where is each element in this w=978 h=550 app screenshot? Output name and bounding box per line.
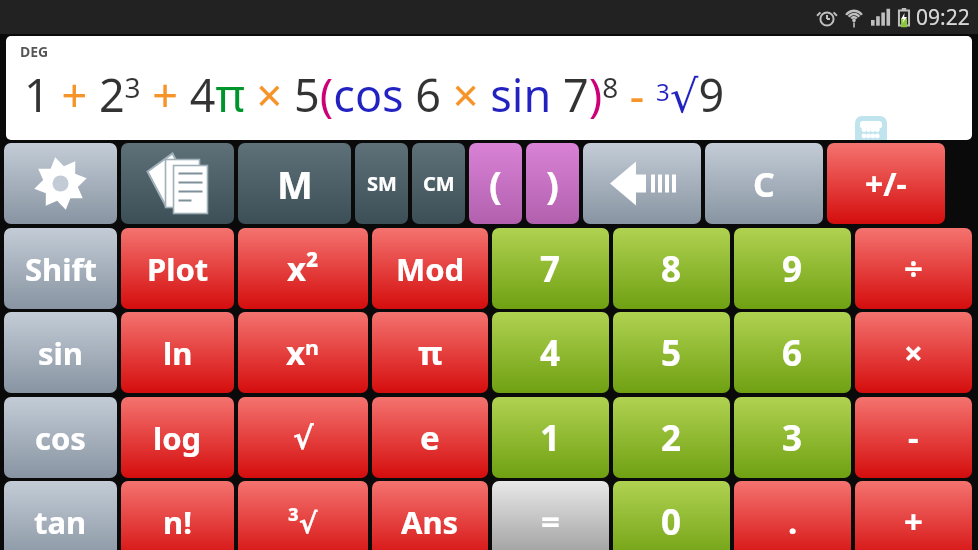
staticText: 8 [661, 245, 682, 293]
staticText: +/- [865, 162, 907, 206]
staticText: ³√ [288, 503, 318, 541]
staticText: 2 [661, 414, 682, 462]
staticText: 0 [661, 498, 682, 546]
button[interactable]: 4 [492, 312, 609, 393]
staticText: + [904, 499, 923, 544]
staticText: M [277, 158, 313, 210]
button[interactable]: + [855, 481, 972, 550]
staticText: 3 [782, 414, 803, 462]
staticText: ) [546, 158, 559, 210]
button[interactable]: ÷ [855, 228, 972, 309]
staticText: DEG [20, 42, 49, 61]
button[interactable]: x² [238, 228, 368, 309]
staticText: . [788, 499, 798, 544]
button[interactable]: M [238, 143, 351, 224]
staticText: × [904, 330, 923, 375]
button[interactable]: Backspace [583, 143, 701, 224]
staticText: Mod [396, 248, 465, 290]
button[interactable]: 7 [492, 228, 609, 309]
button[interactable]: ln [121, 312, 234, 393]
staticText: 7 [540, 245, 561, 293]
button[interactable]: 9 [734, 228, 851, 309]
staticText: = [541, 499, 560, 544]
button[interactable]: cos [4, 397, 117, 478]
staticText: ( [489, 158, 502, 210]
staticText: Plot [147, 248, 209, 290]
button[interactable]: sin [4, 312, 117, 393]
button[interactable]: log [121, 397, 234, 478]
button[interactable]: Settings [4, 143, 117, 224]
staticText: n! [163, 501, 192, 543]
button[interactable]: Ans [372, 481, 488, 550]
button[interactable]: × [855, 312, 972, 393]
staticText: cos [35, 417, 86, 459]
button[interactable]: - [855, 397, 972, 478]
button[interactable]: Plot [121, 228, 234, 309]
staticText: sin [38, 332, 83, 374]
button[interactable]: 6 [734, 312, 851, 393]
button[interactable]: = [492, 481, 609, 550]
button[interactable]: n! [121, 481, 234, 550]
button[interactable]: Shift [4, 228, 117, 309]
staticText: SM [367, 170, 397, 197]
button[interactable]: ³√ [238, 481, 368, 550]
staticText: - [908, 415, 919, 460]
button[interactable]: C [705, 143, 823, 224]
button[interactable]: 3 [734, 397, 851, 478]
button[interactable]: xⁿ [238, 312, 368, 393]
staticText: √ [293, 420, 314, 456]
button[interactable]: 1 [492, 397, 609, 478]
staticText: ÷ [904, 246, 923, 291]
button[interactable]: 2 [613, 397, 730, 478]
button[interactable]: Mod [372, 228, 488, 309]
staticText: 09:22 [916, 3, 970, 32]
button[interactable]: . [734, 481, 851, 550]
button[interactable]: 0 [613, 481, 730, 550]
staticText: 1 [540, 414, 561, 462]
staticText: log [153, 417, 202, 459]
button[interactable]: Notes [121, 143, 234, 224]
button[interactable]: ( [469, 143, 522, 224]
staticText: 5 [661, 329, 682, 377]
button[interactable]: 8 [613, 228, 730, 309]
button[interactable]: 5 [613, 312, 730, 393]
button[interactable]: π [372, 312, 488, 393]
staticText: π [418, 330, 443, 375]
staticText: xⁿ [286, 330, 320, 375]
staticText: Shift [25, 248, 97, 290]
button[interactable]: DEG [6, 36, 972, 140]
staticText: ln [163, 332, 193, 374]
button[interactable]: SM [355, 143, 408, 224]
staticText: 4 [540, 329, 561, 377]
button[interactable]: CM [412, 143, 465, 224]
staticText: e [420, 415, 440, 460]
staticText: x² [287, 246, 319, 291]
staticText: 9 [782, 245, 803, 293]
staticText: CM [423, 170, 455, 197]
button[interactable]: tan [4, 481, 117, 550]
staticText: 1 + 23 + 4π × 5(cos 6 × sin 7)8 - 3√9 [24, 64, 736, 125]
button[interactable]: √ [238, 397, 368, 478]
button[interactable]: +/- [827, 143, 945, 224]
staticText: tan [34, 501, 87, 543]
staticText: C [753, 161, 775, 207]
button[interactable]: ) [526, 143, 579, 224]
staticText: Ans [401, 501, 459, 543]
staticText: 6 [782, 329, 803, 377]
button[interactable]: e [372, 397, 488, 478]
